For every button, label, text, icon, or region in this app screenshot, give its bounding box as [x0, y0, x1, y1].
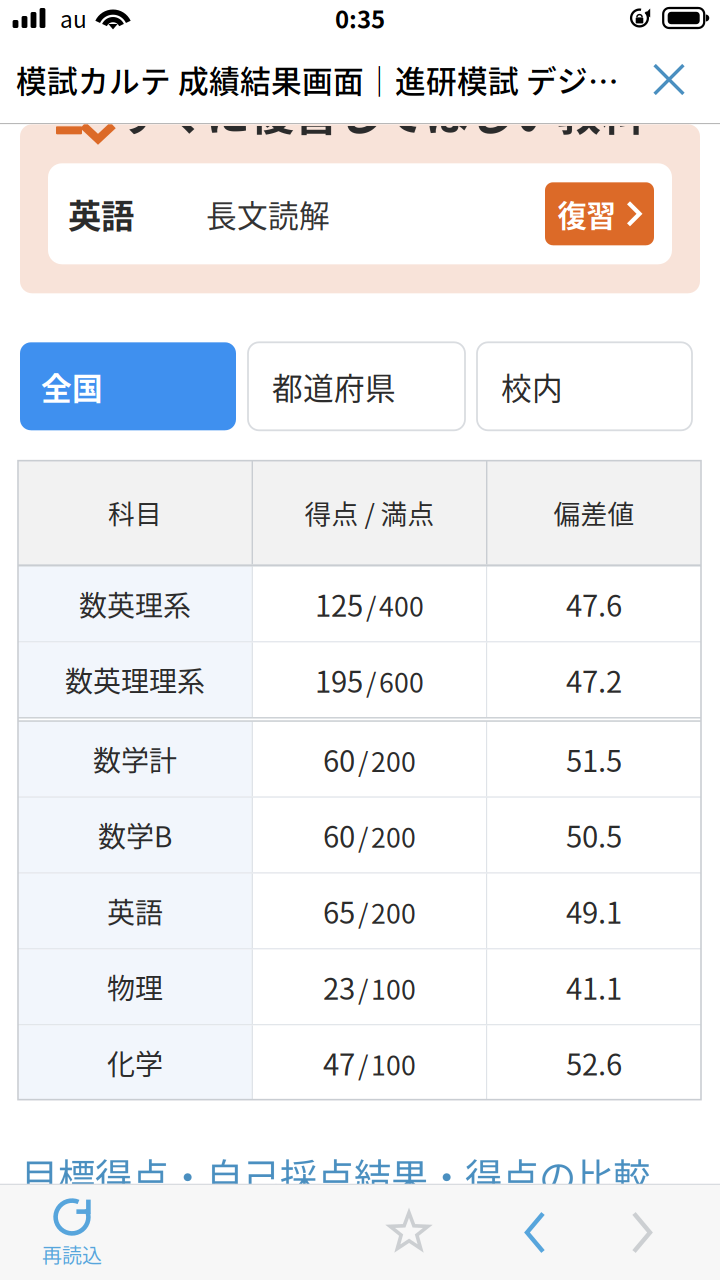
staticText: 100: [371, 969, 416, 1007]
staticText: 数学B: [98, 815, 172, 855]
staticText: 長文読解: [206, 192, 330, 236]
staticText: 科目: [108, 493, 162, 532]
staticText: 化学: [107, 1042, 163, 1083]
staticText: 都道府県: [272, 364, 396, 408]
staticText: 23: [323, 966, 355, 1008]
button[interactable]: 英語: [48, 163, 672, 264]
staticText: /: [358, 741, 368, 780]
staticText: 47.2: [566, 659, 622, 701]
button[interactable]: 再読込: [0, 1185, 144, 1280]
staticText: 400: [379, 586, 424, 624]
staticText: au: [60, 2, 87, 34]
staticText: すぐに復習してほしい教科: [118, 80, 645, 143]
staticText: 41.1: [566, 966, 622, 1008]
staticText: 再読込: [42, 1240, 102, 1269]
staticText: 200: [371, 741, 416, 780]
staticText: 47: [323, 1041, 355, 1084]
staticText: 200: [371, 817, 416, 855]
staticText: 50.5: [566, 814, 622, 856]
button[interactable]: ブックマーク: [358, 1185, 460, 1280]
staticText: 数英理理系: [65, 660, 205, 700]
staticText: 数英理系: [79, 584, 191, 624]
button[interactable]: 戻る: [484, 1185, 586, 1280]
staticText: 英語: [107, 891, 163, 931]
staticText: 得点 / 満点: [304, 493, 434, 532]
staticText: 復習: [557, 193, 615, 235]
button[interactable]: 全国: [20, 342, 236, 430]
staticText: 偏差値: [553, 493, 634, 532]
staticText: 物理: [107, 967, 163, 1007]
staticText: 52.6: [566, 1041, 622, 1084]
staticText: 195: [315, 659, 363, 701]
staticText: /: [358, 1045, 368, 1083]
button[interactable]: 閉じる: [637, 47, 701, 111]
staticText: 模試カルテ 成績結果画面｜進研模試 デジ…: [16, 57, 619, 102]
staticText: /: [358, 893, 368, 931]
staticText: 校内: [501, 364, 563, 408]
staticText: /: [366, 586, 376, 624]
staticText: 65: [323, 890, 355, 932]
staticText: /: [358, 817, 368, 855]
staticText: 全国: [41, 364, 103, 408]
staticText: 60: [323, 814, 355, 856]
staticText: 0:35: [335, 1, 385, 35]
staticText: 100: [371, 1045, 416, 1083]
staticText: 英語: [68, 190, 134, 238]
staticText: 600: [379, 662, 424, 700]
staticText: 目標得点・自己採点結果・得点の比較: [21, 1148, 650, 1202]
staticText: 125: [315, 583, 363, 625]
staticText: 60: [323, 738, 355, 780]
button[interactable]: 校内: [477, 342, 692, 430]
staticText: 51.5: [566, 738, 622, 780]
staticText: 200: [371, 893, 416, 931]
button[interactable]: 進む: [591, 1185, 693, 1280]
staticText: 49.1: [566, 890, 622, 932]
staticText: /: [366, 662, 376, 700]
staticText: /: [358, 969, 368, 1007]
staticText: 47.6: [566, 583, 622, 625]
staticText: 数学計: [93, 739, 177, 779]
button[interactable]: 都道府県: [248, 342, 465, 430]
